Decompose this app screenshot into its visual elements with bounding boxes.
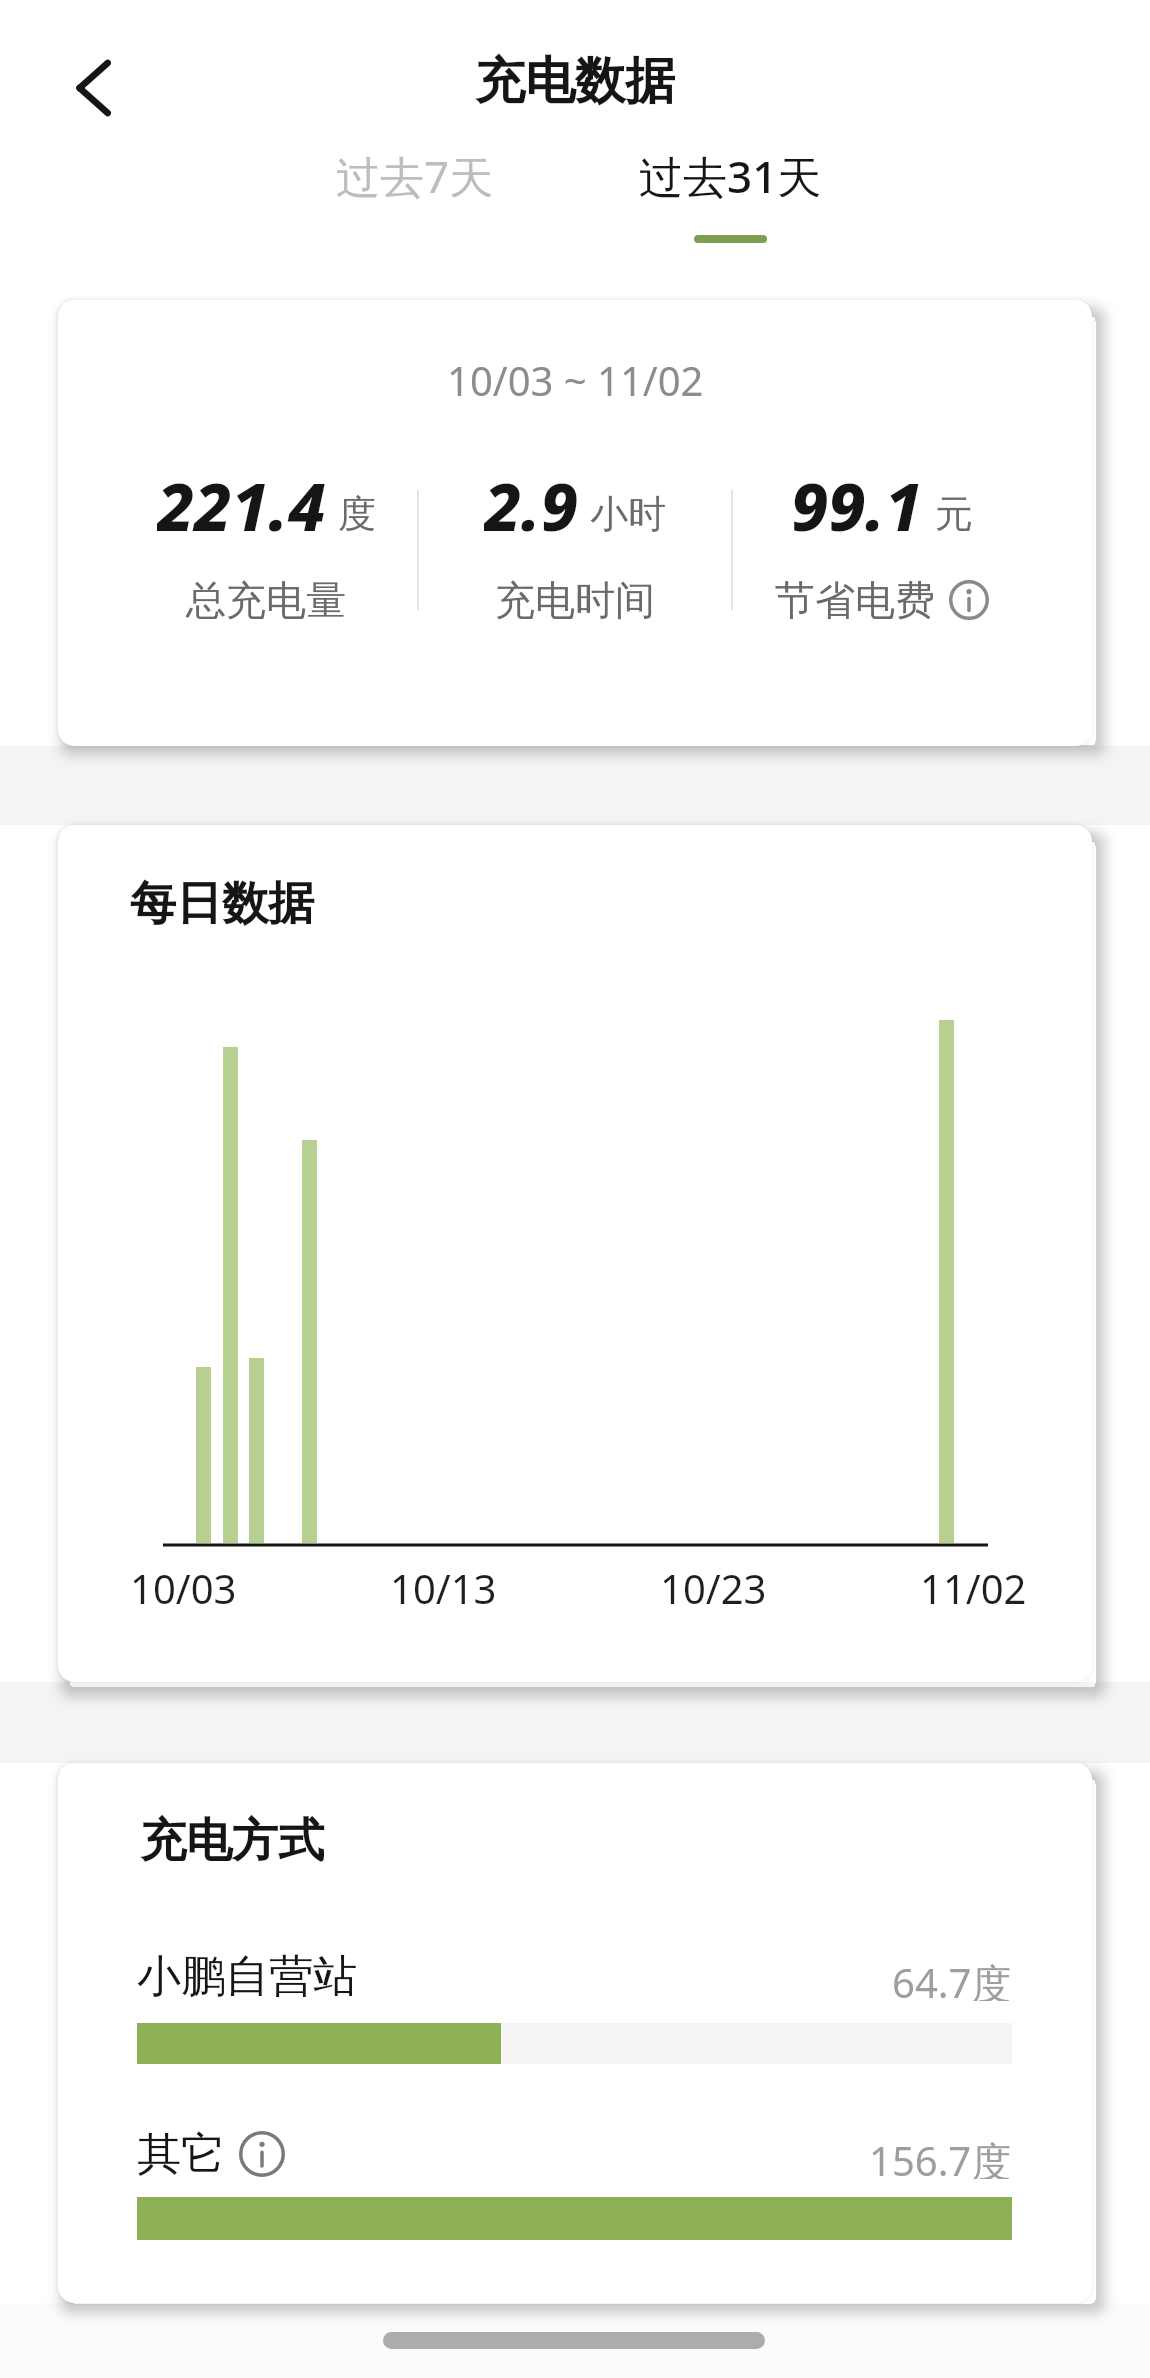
staticText: 221.4 [157, 460, 326, 544]
staticText: 元 [935, 490, 973, 538]
staticText: 小鹏自营站 [137, 1949, 357, 2003]
staticText: 充电时间 [495, 575, 655, 625]
button[interactable]: 其它 [137, 2127, 285, 2181]
staticText: 每日数据 [130, 875, 314, 933]
staticText: 节省电费 [775, 575, 935, 625]
staticText: 度 [338, 490, 376, 538]
staticText: 充电方式 [140, 1812, 324, 1870]
staticText: 10/03 ~ 11/02 [447, 353, 704, 407]
staticText: 2.9 [484, 460, 578, 544]
staticText: 其它 [137, 2127, 225, 2181]
staticText: 小时 [590, 490, 666, 538]
staticText: 10/23 [660, 1561, 767, 1613]
staticText: 11/02 [920, 1561, 1027, 1613]
button[interactable]: 过去7天 [330, 146, 500, 206]
staticText: 99.1 [791, 460, 923, 544]
button[interactable]: 过去31天 [630, 146, 830, 206]
staticText: 总充电量 [186, 575, 346, 625]
staticText: 10/03 [130, 1561, 237, 1613]
staticText: 过去31天 [639, 146, 822, 206]
staticText: 156.7度 [869, 2133, 1012, 2179]
staticText: 充电数据 [475, 50, 675, 112]
staticText: 过去7天 [336, 146, 494, 206]
button[interactable] [62, 56, 126, 120]
staticText: 10/13 [390, 1561, 497, 1613]
button[interactable] [949, 580, 989, 620]
staticText: 64.7度 [892, 1955, 1012, 2001]
